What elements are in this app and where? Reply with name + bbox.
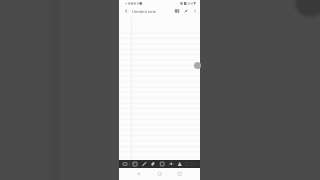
button[interactable]: Split view	[173, 7, 181, 15]
button[interactable]: Back	[122, 7, 130, 15]
button[interactable]: More options	[191, 7, 199, 15]
button[interactable]: Scroll	[194, 62, 201, 69]
staticText: Untitled note	[132, 9, 157, 14]
button[interactable]: Pin	[182, 7, 190, 15]
